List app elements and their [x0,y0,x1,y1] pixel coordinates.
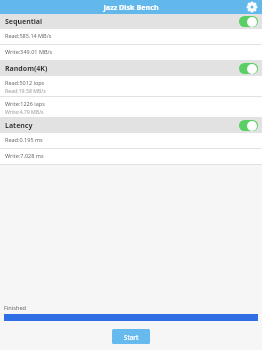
button[interactable]: Read:5012 iops [0,76,262,97]
staticText: Write:549.01 MB/s [5,48,53,55]
button[interactable]: Write:7.028 ms [0,149,262,165]
button[interactable]: Toggle [239,16,258,27]
staticText: Write:1226 iaps [5,100,45,107]
button[interactable]: Settings [246,1,258,13]
button[interactable]: Toggle [239,120,258,131]
staticText: Write:7.028 ms [5,152,44,159]
button[interactable]: Read:585.14 MB/s [0,29,262,45]
staticText: Random(4K) [5,64,239,74]
staticText: Latency [5,121,239,131]
button[interactable]: Latency [0,118,262,133]
staticText: Sequential [5,17,239,27]
staticText: Read:585.14 MB/s [5,32,52,39]
staticText: Read:0.195 ms [5,136,43,143]
button[interactable]: Start [112,329,150,344]
staticText: Start [124,333,139,341]
staticText: Write:4.79 MB/s [5,108,44,115]
button[interactable]: Write:1226 iaps [0,97,262,118]
button[interactable]: Toggle [239,63,258,74]
staticText: Finished [4,304,26,312]
staticText: Read:19.58 MB/s [5,87,46,94]
button[interactable]: Write:549.01 MB/s [0,45,262,61]
button[interactable]: Sequential [0,14,262,29]
button[interactable]: Read:0.195 ms [0,133,262,149]
button[interactable]: Random(4K) [0,61,262,76]
staticText: Jazz Disk Bench [0,2,262,12]
staticText: Read:5012 iops [5,79,45,86]
